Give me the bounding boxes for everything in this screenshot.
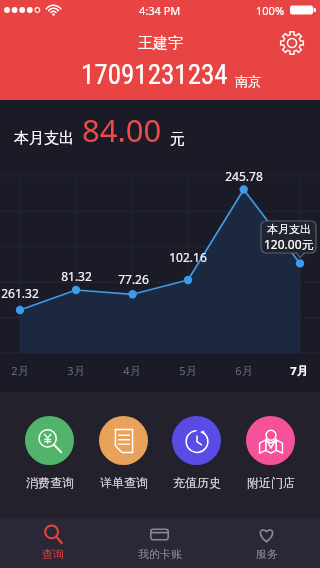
staticText: 81.32 [61,268,92,281]
staticText: 2月 [11,363,29,377]
staticText: 17091231234 [81,59,228,91]
button[interactable]: 服务 [213,518,320,568]
staticText: 查询 [42,547,64,561]
button[interactable]: 消费查询 [25,416,74,490]
staticText: 王建宇 [138,34,183,53]
button[interactable]: 附近门店 [246,416,295,490]
staticText: 6月 [235,363,253,377]
staticText: 120.00元 [264,236,314,252]
staticText: 消费查询 [26,475,74,490]
button[interactable]: 详单查询 [99,416,148,490]
staticText: 附近门店 [247,475,295,490]
staticText: 我的卡账 [138,547,182,561]
button[interactable]: 充值历史 [172,416,221,490]
staticText: 详单查询 [100,475,148,490]
staticText: 84.00 [82,109,162,151]
staticText: 服务 [256,547,278,561]
staticText: 261.32 [1,285,39,298]
staticText: 充值历史 [173,475,221,490]
staticText: 7月 [290,363,308,377]
button[interactable]: Settings [276,27,308,59]
staticText: 245.78 [225,168,263,181]
staticText: 本月支出 [267,222,311,236]
button[interactable]: 查询 [0,518,106,568]
staticText: 77.26 [118,271,149,284]
staticText: 4:34 PM [139,3,181,18]
staticText: 4月 [123,363,141,377]
button[interactable]: 我的卡账 [106,518,213,568]
staticText: 102.16 [169,249,207,262]
staticText: 南京 [235,73,261,89]
staticText: 100% [256,3,285,18]
staticText: 3月 [67,363,85,377]
staticText: 本月支出 [14,129,74,148]
staticText: 元 [170,130,185,149]
staticText: 5月 [179,363,197,377]
